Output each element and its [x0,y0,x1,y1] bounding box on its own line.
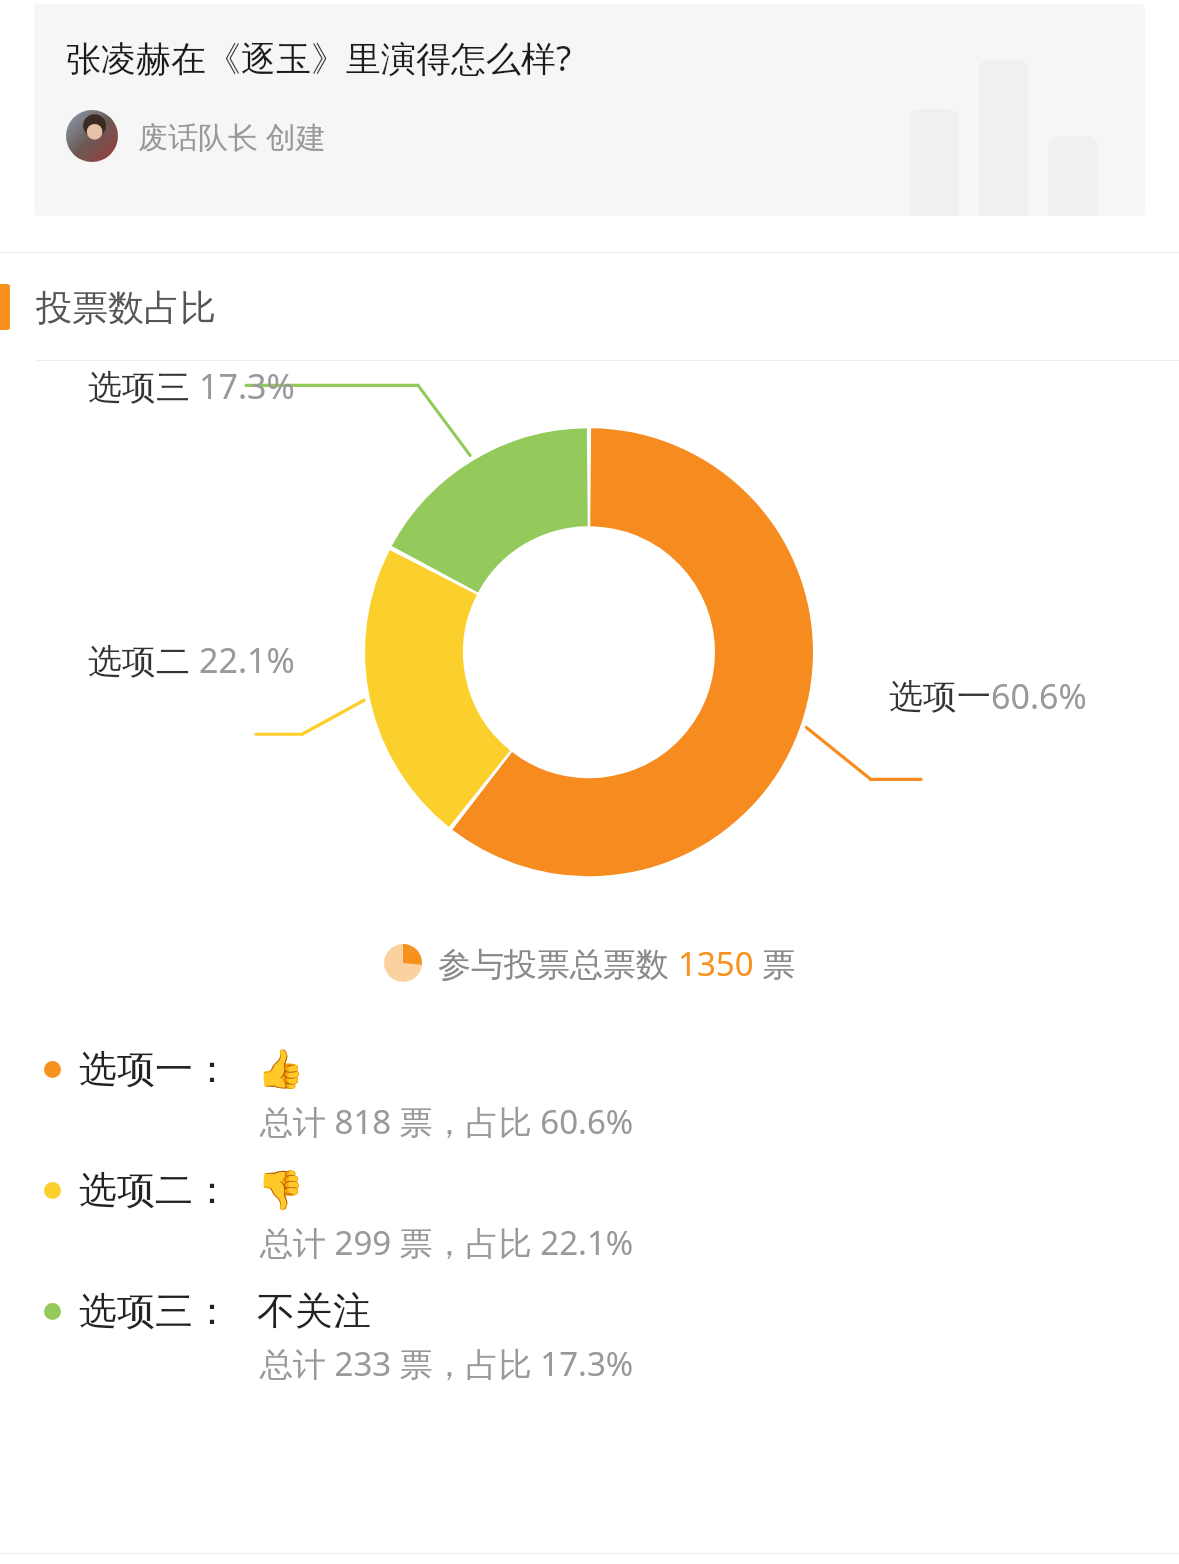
button[interactable]: 选项二： [0,1160,1179,1281]
staticText: 60.6% [991,673,1087,719]
staticText: 选项一： [79,1045,231,1093]
staticText: 选项二： [79,1166,231,1214]
staticText: 17.3% [199,363,295,409]
staticText: 1350 [678,941,754,986]
staticText: 票 [754,941,796,986]
staticText: 选项一 [889,675,991,718]
button[interactable]: 张凌赫在《逐玉》里演得怎么样? [34,4,1145,216]
staticText: 选项二 [88,637,199,683]
staticText: 不关注 [257,1287,371,1335]
staticText: 总计 818 票，占比 60.6% [260,1099,634,1144]
staticText: 👍 [257,1047,305,1092]
staticText: 参与投票总票数 [438,941,678,986]
staticText: 总计 299 票，占比 22.1% [260,1220,634,1265]
staticText: 总计 233 票，占比 17.3% [260,1341,634,1386]
staticText: 投票数占比 [36,285,216,330]
button[interactable]: 用户头像 [66,110,118,162]
staticText: 选项三 [88,363,199,409]
button[interactable]: 选项三： [0,1281,1179,1402]
staticText: 张凌赫在《逐玉》里演得怎么样? [66,34,572,82]
staticText: 废话队长 创建 [138,116,326,157]
staticText: 选项三： [79,1287,231,1335]
staticText: 👎 [257,1168,305,1213]
button[interactable]: 选项一： [0,1039,1179,1160]
staticText: 22.1% [199,637,295,683]
